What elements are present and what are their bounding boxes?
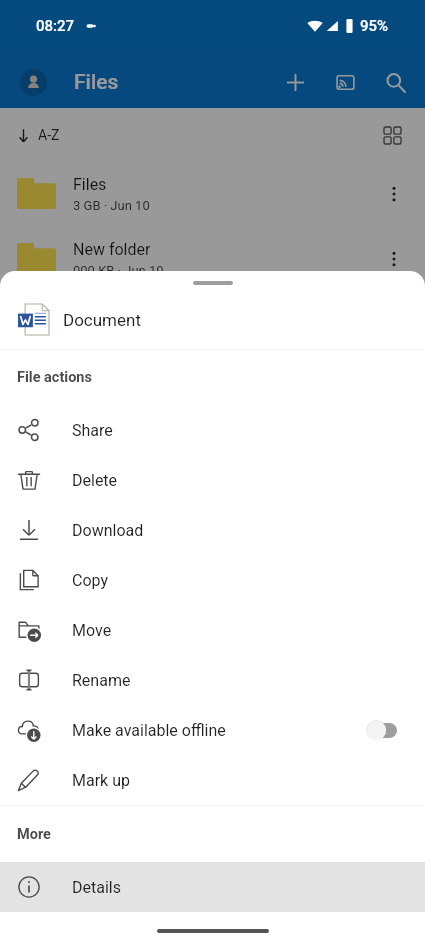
staticText: 08:27 [36,17,75,35]
button[interactable]: Copy [0,555,425,605]
button[interactable]: Download [0,505,425,555]
button[interactable]: New folder [0,226,425,291]
button[interactable]: Add [274,61,316,103]
button[interactable]: More options [377,177,411,211]
button[interactable]: Share [0,405,425,455]
staticText: 3 GB · Jun 10 [73,198,150,213]
button[interactable]: Delete [0,455,425,505]
button[interactable]: Grid view [377,120,407,150]
staticText: More [17,826,51,843]
staticText: Move [72,621,112,640]
button[interactable]: Files [0,161,425,226]
staticText: Document [63,310,141,330]
button[interactable]: Search [374,61,416,103]
button[interactable]: Rename [0,655,425,705]
staticText: Share [72,421,113,440]
button[interactable]: Pictures [0,291,425,356]
button[interactable]: Account [20,69,47,96]
staticText: Files [73,175,107,194]
staticText: Make available offline [72,721,226,740]
staticText: Rename [72,671,131,690]
button[interactable]: Details [0,862,425,912]
button[interactable]: More options [377,242,411,276]
staticText: Download [72,521,144,540]
button[interactable]: Cast [324,61,366,103]
button[interactable]: Sort [16,127,60,143]
button[interactable]: Document [0,290,425,349]
staticText: Pictures [73,305,132,324]
staticText: Delete [72,471,118,490]
button[interactable]: Mark up [0,755,425,805]
staticText: Files [74,70,119,95]
button[interactable]: Make available offline [0,705,425,755]
staticText: 000 KB · Jun 10 [73,263,164,278]
staticText: New folder [73,240,151,259]
staticText: A-Z [38,127,60,143]
staticText: Copy [72,571,109,590]
staticText: 95% [360,17,389,35]
staticText: Details [72,878,121,897]
staticText: Mark up [72,771,130,790]
button[interactable]: Move [0,605,425,655]
staticText: File actions [17,369,92,386]
